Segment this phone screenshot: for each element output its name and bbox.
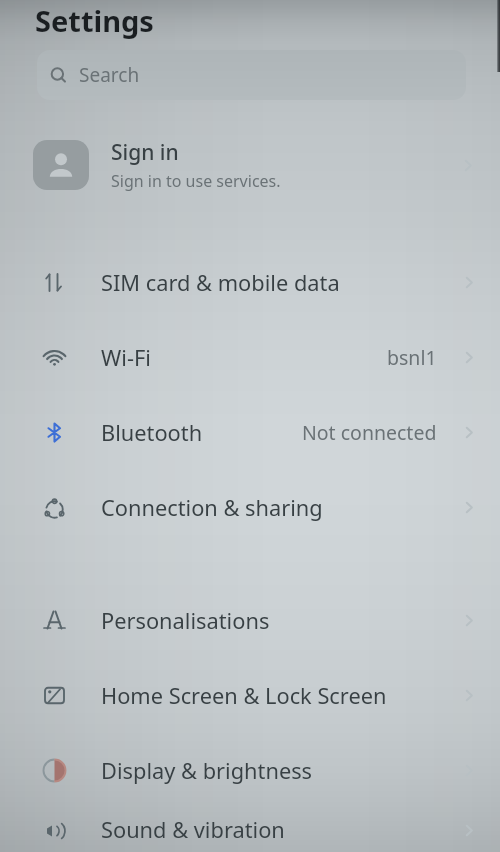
staticText: Display & brightness	[101, 756, 313, 786]
other: Open	[461, 274, 478, 291]
button[interactable]: Display & brightness	[0, 733, 500, 808]
button[interactable]: Home Screen & Lock Screen	[0, 658, 500, 733]
button[interactable]: Bluetooth	[0, 395, 500, 470]
other: Open	[461, 822, 478, 839]
staticText: Settings	[35, 1, 154, 40]
other: Open	[461, 612, 478, 629]
button[interactable]: Sign in	[0, 128, 500, 202]
other: Open	[461, 349, 478, 366]
staticText: bsnl1	[387, 344, 437, 371]
staticText: Sound & vibration	[101, 815, 285, 845]
staticText: Wi-Fi	[101, 343, 151, 373]
button[interactable]: Connection & sharing	[0, 470, 500, 545]
button[interactable]: SIM card & mobile data	[0, 245, 500, 320]
staticText: SIM card & mobile data	[101, 268, 340, 298]
other: Open	[461, 424, 478, 441]
button[interactable]: Sound & vibration	[0, 808, 500, 852]
staticText: Not connected	[302, 419, 437, 446]
other: Open	[461, 499, 478, 516]
staticText: Bluetooth	[101, 418, 203, 448]
staticText: Search	[79, 62, 140, 88]
staticText: Personalisations	[101, 606, 270, 636]
button[interactable]: Personalisations	[0, 583, 500, 658]
staticText: Sign in to use services.	[111, 170, 281, 192]
staticText: Connection & sharing	[101, 493, 323, 523]
button[interactable]: Search	[37, 50, 466, 100]
button[interactable]: Wi-Fi	[0, 320, 500, 395]
staticText: Home Screen & Lock Screen	[101, 681, 387, 711]
other: Open	[461, 687, 478, 704]
staticText: Sign in	[111, 138, 179, 167]
